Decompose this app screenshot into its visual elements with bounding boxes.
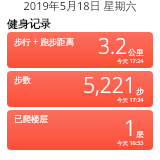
staticText: 步行 + 跑步距离 <box>14 36 75 48</box>
staticText: 健身记录 <box>7 17 51 31</box>
staticText: 今天 17:24 <box>117 57 144 65</box>
button[interactable]: 步数 <box>7 71 153 107</box>
staticText: 今天 17:24 <box>117 96 144 104</box>
staticText: 层 <box>136 129 144 139</box>
staticText: 步数 <box>14 75 31 86</box>
staticText: 5,221 <box>83 71 136 100</box>
staticText: 已爬楼层 <box>14 114 48 125</box>
staticText: 2019年5月18日 星期六 <box>0 0 160 13</box>
staticText: 3.2 <box>98 32 128 61</box>
staticText: 1 <box>124 114 136 143</box>
button[interactable]: 步行 + 跑步距离 <box>7 32 153 68</box>
staticText: 今天 16:33 <box>117 139 144 147</box>
staticText: 步 <box>136 86 144 96</box>
staticText: 公里 <box>128 47 144 57</box>
button[interactable]: 已爬楼层 <box>7 110 153 150</box>
